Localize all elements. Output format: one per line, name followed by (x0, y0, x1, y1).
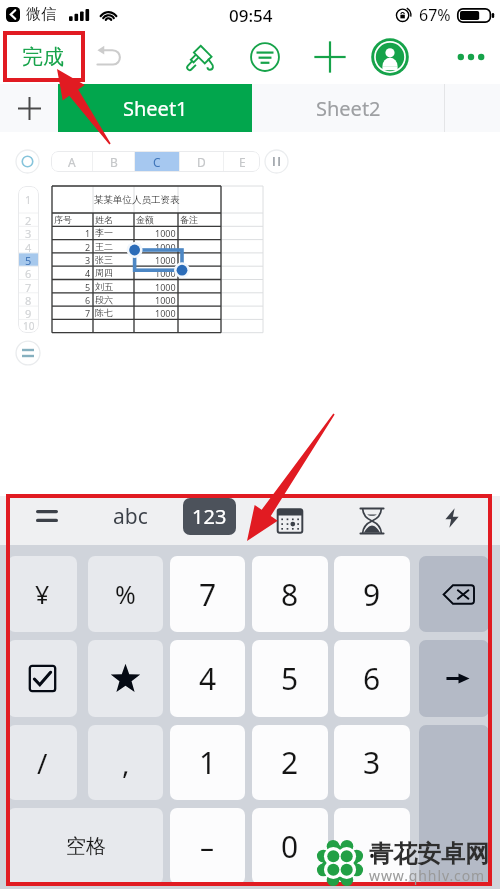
staticText: 1000 (155, 227, 176, 239)
button[interactable]: More (454, 40, 488, 74)
staticText: Sheet2 (316, 95, 381, 122)
button[interactable]: Format brush (183, 40, 217, 74)
button[interactable]: 9 (334, 556, 410, 632)
staticText: 段六 (95, 294, 113, 305)
staticText: 王二 (95, 241, 113, 252)
button[interactable]: Date (268, 499, 312, 543)
staticText: 2 (85, 241, 91, 253)
staticText: 3 (363, 742, 381, 783)
staticText: 1000 (155, 281, 176, 293)
button[interactable]: B (93, 151, 134, 172)
button[interactable]: 8 (252, 556, 328, 632)
staticText: Sheet1 (123, 95, 188, 122)
staticText: 1 (199, 742, 217, 783)
staticText: D (197, 154, 206, 170)
staticText: 3 (85, 254, 91, 266)
staticText: 1000 (155, 241, 176, 253)
staticText: 完成 (22, 44, 64, 70)
staticText: 2 (25, 213, 32, 226)
button[interactable]: 10 (18, 319, 39, 332)
staticText: 李一 (95, 227, 113, 238)
button[interactable]: 3 (18, 226, 39, 239)
button[interactable]: 4 (18, 240, 39, 253)
staticText: 青花安卓网 (369, 839, 489, 869)
button[interactable]: 空格 (8, 808, 163, 884)
button[interactable]: Quick (430, 499, 474, 543)
staticText: 周四 (95, 267, 113, 278)
button[interactable]: Record (15, 149, 40, 174)
button[interactable]: Checkbox (8, 640, 77, 717)
staticText: 6 (85, 294, 91, 306)
staticText: B (110, 154, 118, 170)
button[interactable]: 1 (170, 725, 245, 800)
staticText: 刘五 (95, 281, 113, 292)
button[interactable]: 5 (252, 640, 328, 717)
button[interactable]: / (8, 725, 77, 800)
staticText: 张三 (95, 254, 113, 265)
button[interactable]: Next (419, 640, 489, 717)
staticText: 备注 (180, 214, 198, 225)
button[interactable]: 5 (18, 253, 39, 266)
staticText: A (68, 154, 76, 170)
button[interactable]: D (180, 151, 223, 172)
button[interactable]: Star (88, 640, 163, 717)
button[interactable]: Pause (264, 149, 289, 174)
button[interactable]: Menu (25, 494, 69, 538)
staticText: 1000 (155, 307, 176, 319)
button[interactable]: Insert (313, 40, 347, 74)
button[interactable]: Account (370, 37, 410, 77)
button[interactable]: – (170, 808, 245, 884)
button[interactable]: Sheet2 (252, 84, 444, 132)
staticText: abc (113, 502, 148, 531)
staticText: . (368, 826, 377, 867)
staticText: www.qhhlv.com (369, 866, 486, 885)
button[interactable]: Add sheet (0, 84, 58, 132)
staticText: 空格 (66, 834, 106, 859)
button[interactable]: 0 (252, 808, 328, 884)
button[interactable]: % (88, 556, 163, 632)
button[interactable]: Sheet1 (58, 84, 252, 132)
button[interactable]: ¥ (8, 556, 77, 632)
staticText: 1 (25, 192, 32, 207)
staticText: 9 (25, 306, 32, 319)
button[interactable]: 完成 (16, 40, 70, 74)
button[interactable]: 1 (18, 186, 39, 213)
staticText: 09:54 (229, 4, 273, 27)
staticText: 8 (25, 293, 32, 306)
staticText: 2 (281, 742, 299, 783)
staticText: 陈七 (95, 307, 113, 318)
button[interactable]: . (334, 808, 410, 884)
button[interactable]: 7 (18, 280, 39, 293)
staticText: 4 (85, 267, 91, 279)
button[interactable]: A (51, 151, 92, 172)
button[interactable]: Backspace (419, 556, 489, 632)
button[interactable]: 7 (170, 556, 245, 632)
staticText: – (200, 827, 215, 865)
button[interactable]: 123 (183, 498, 236, 535)
button[interactable]: 6 (18, 266, 39, 279)
staticText: 5 (25, 253, 32, 266)
button[interactable]: E (224, 151, 260, 172)
button[interactable]: 6 (334, 640, 410, 717)
button[interactable]: , (88, 725, 163, 800)
button[interactable]: C (135, 151, 179, 172)
button[interactable]: Align (248, 40, 282, 74)
button[interactable]: Enter (419, 725, 489, 884)
staticText: 7 (85, 307, 91, 319)
button[interactable]: 8 (18, 293, 39, 306)
button[interactable]: 2 (252, 725, 328, 800)
staticText: 7 (199, 574, 217, 615)
button[interactable]: Formula (15, 340, 41, 366)
button[interactable]: 2 (18, 213, 39, 226)
button[interactable]: 4 (170, 640, 245, 717)
staticText: 某某单位人员工资表 (94, 194, 180, 206)
staticText: 0 (281, 826, 299, 867)
staticText: 4 (199, 658, 217, 699)
staticText: , (122, 744, 130, 782)
staticText: 10 (23, 319, 35, 332)
button[interactable]: Undo (92, 40, 126, 74)
button[interactable]: Time (350, 499, 394, 543)
button[interactable]: abc (103, 498, 157, 535)
button[interactable]: 3 (334, 725, 410, 800)
button[interactable]: 9 (18, 306, 39, 319)
